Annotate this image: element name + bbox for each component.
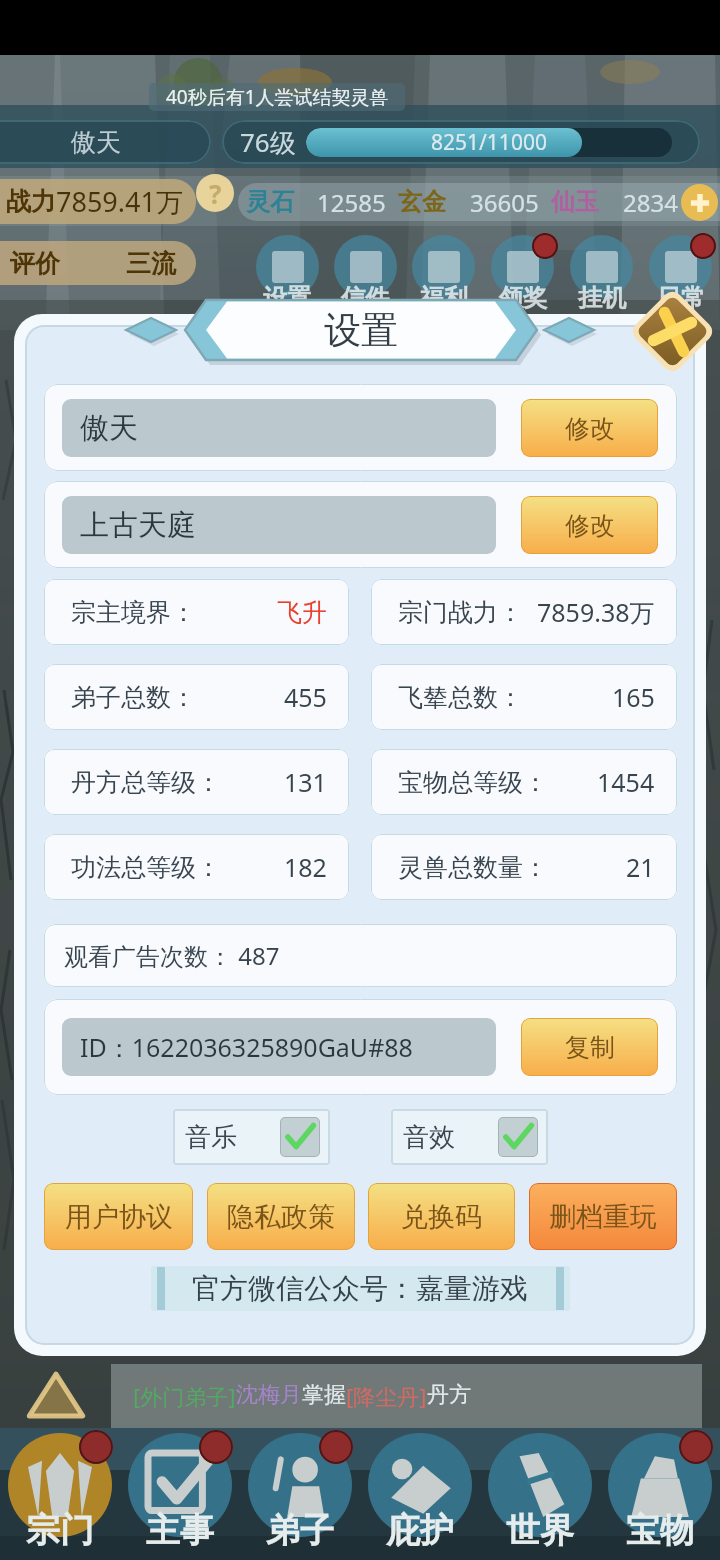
staticText: 福利	[420, 283, 468, 313]
button[interactable]: 评价	[0, 241, 196, 285]
staticText: 信件	[341, 283, 389, 313]
staticText: 36605	[470, 186, 539, 219]
button[interactable]: 用户协议	[44, 1183, 193, 1250]
button[interactable]: 添加	[681, 184, 718, 221]
staticText: 灵石	[246, 187, 294, 217]
staticText: 复制	[565, 1032, 615, 1063]
staticText: 设置	[324, 307, 398, 354]
staticText: 挂机	[578, 283, 626, 313]
staticText: 世界	[506, 1509, 574, 1552]
staticText: 日常	[657, 283, 705, 313]
staticText: 设置	[263, 283, 311, 313]
staticText: 131	[284, 765, 327, 799]
staticText: 上古天庭	[80, 507, 196, 544]
button[interactable]: 宝物	[600, 1430, 720, 1560]
staticText: 弟子总数：	[71, 682, 196, 713]
staticText: 飞升	[277, 597, 327, 628]
button[interactable]: 世界	[480, 1430, 600, 1560]
staticText: 音效	[403, 1121, 455, 1154]
staticText: 8251/11000	[431, 128, 547, 157]
button[interactable]: 弟子	[240, 1430, 360, 1560]
button[interactable]: 修改	[521, 399, 658, 457]
staticText: 傲天	[71, 127, 121, 158]
staticText: 455	[284, 680, 327, 714]
button[interactable]: 官方微信公众号：嘉量游戏	[151, 1266, 570, 1311]
staticText: 40秒后有1人尝试结契灵兽	[166, 84, 389, 110]
staticText: 三流	[126, 248, 176, 279]
staticText: 12585	[317, 186, 386, 219]
button[interactable]: 帮助	[196, 174, 234, 212]
button[interactable]: 兑换码	[368, 1183, 515, 1250]
button[interactable]: 隐私政策	[207, 1183, 355, 1250]
staticText: 76级	[240, 124, 296, 160]
staticText: 宗门战力：	[398, 597, 523, 628]
staticText: 删档重玩	[549, 1200, 657, 1234]
staticText: 战力	[6, 186, 56, 217]
button[interactable]: 宗门	[0, 1430, 120, 1560]
staticText: [外门弟子]	[133, 1381, 236, 1411]
button[interactable]: 庇护	[360, 1430, 480, 1560]
staticText: 音乐	[185, 1121, 237, 1154]
staticText: 兑换码	[401, 1200, 482, 1234]
button[interactable]: 删档重玩	[529, 1183, 677, 1250]
staticText: 7859.38万	[537, 595, 655, 629]
staticText: 隐私政策	[227, 1200, 335, 1234]
staticText: 评价	[10, 248, 60, 279]
staticText: [降尘丹]	[346, 1381, 427, 1411]
staticText: 用户协议	[65, 1200, 173, 1234]
button[interactable]: 复制	[521, 1018, 658, 1076]
staticText: 182	[284, 850, 327, 884]
staticText: 庇护	[386, 1509, 454, 1552]
staticText: 玄金	[398, 187, 446, 217]
staticText: 7859.41万	[56, 183, 183, 220]
button[interactable]: 主事	[120, 1430, 240, 1560]
staticText: 2834	[623, 186, 678, 219]
button[interactable]: 傲天	[0, 120, 211, 164]
staticText: 丹方总等级：	[71, 767, 221, 798]
button[interactable]: 关闭	[632, 291, 713, 372]
staticText: 功法总等级：	[71, 852, 221, 883]
staticText: 掌握	[302, 1381, 346, 1409]
staticText: 飞辇总数：	[398, 682, 523, 713]
button[interactable]: 音乐	[173, 1109, 330, 1165]
staticText: 主事	[146, 1509, 214, 1552]
staticText: 宝物	[626, 1509, 694, 1552]
staticText: 修改	[565, 413, 615, 444]
staticText: 观看广告次数： 487	[64, 939, 280, 972]
staticText: 官方微信公众号：嘉量游戏	[192, 1271, 528, 1306]
staticText: 弟子	[266, 1509, 334, 1552]
staticText: 傲天	[80, 410, 138, 447]
staticText: 宗主境界：	[71, 597, 196, 628]
staticText: 仙玉	[551, 187, 599, 217]
staticText: 沈梅月	[236, 1381, 302, 1409]
staticText: ID：1622036325890GaU#88	[80, 1030, 413, 1064]
staticText: 灵兽总数量：	[398, 852, 548, 883]
button[interactable]: 警告	[27, 1366, 85, 1424]
staticText: 丹方	[427, 1381, 471, 1409]
staticText: 领奖	[499, 283, 547, 313]
staticText: 修改	[565, 510, 615, 541]
button[interactable]: 音效	[391, 1109, 548, 1165]
button[interactable]: [外门弟子]	[111, 1364, 702, 1428]
staticText: 21	[626, 850, 655, 884]
staticText: 宝物总等级：	[398, 767, 548, 798]
staticText: 165	[612, 680, 655, 714]
staticText: 1454	[597, 765, 655, 799]
staticText: 宗门	[26, 1509, 94, 1552]
staticText: ?	[209, 176, 222, 211]
button[interactable]: 修改	[521, 496, 658, 554]
